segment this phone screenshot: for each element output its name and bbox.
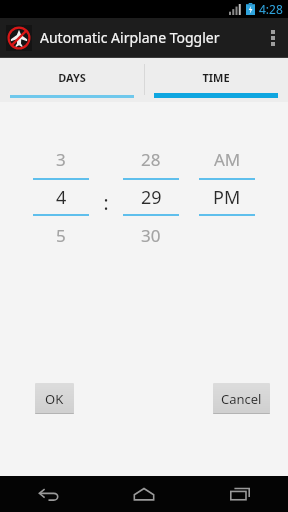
button[interactable]: TIME [144, 58, 288, 102]
staticText: OK [45, 390, 64, 408]
button[interactable]: More options [258, 18, 288, 57]
button[interactable]: Hour [28, 140, 94, 254]
button[interactable]: Cancel [213, 383, 270, 414]
button[interactable]: Back [0, 476, 96, 512]
staticText: 29 [141, 185, 162, 210]
button[interactable]: DAYS [0, 58, 144, 102]
button[interactable]: Minute [118, 140, 184, 254]
staticText: 28 [141, 148, 161, 171]
staticText: 5 [56, 224, 66, 247]
button[interactable]: Recent apps [192, 476, 288, 512]
staticText: TIME [144, 70, 288, 85]
staticText: Cancel [221, 390, 262, 408]
staticText: 4:28 [259, 1, 283, 17]
staticText: : [94, 190, 118, 216]
staticText: Automatic Airplane Toggler [40, 28, 258, 47]
button[interactable]: OK [35, 383, 74, 414]
staticText: 4 [56, 185, 67, 210]
button[interactable]: Home [96, 476, 192, 512]
staticText: 30 [141, 224, 161, 247]
button[interactable]: AM PM [194, 140, 260, 254]
staticText: 3 [56, 148, 66, 171]
staticText: AM [214, 148, 241, 171]
staticText: DAYS [0, 70, 144, 85]
staticText: PM [213, 185, 241, 210]
